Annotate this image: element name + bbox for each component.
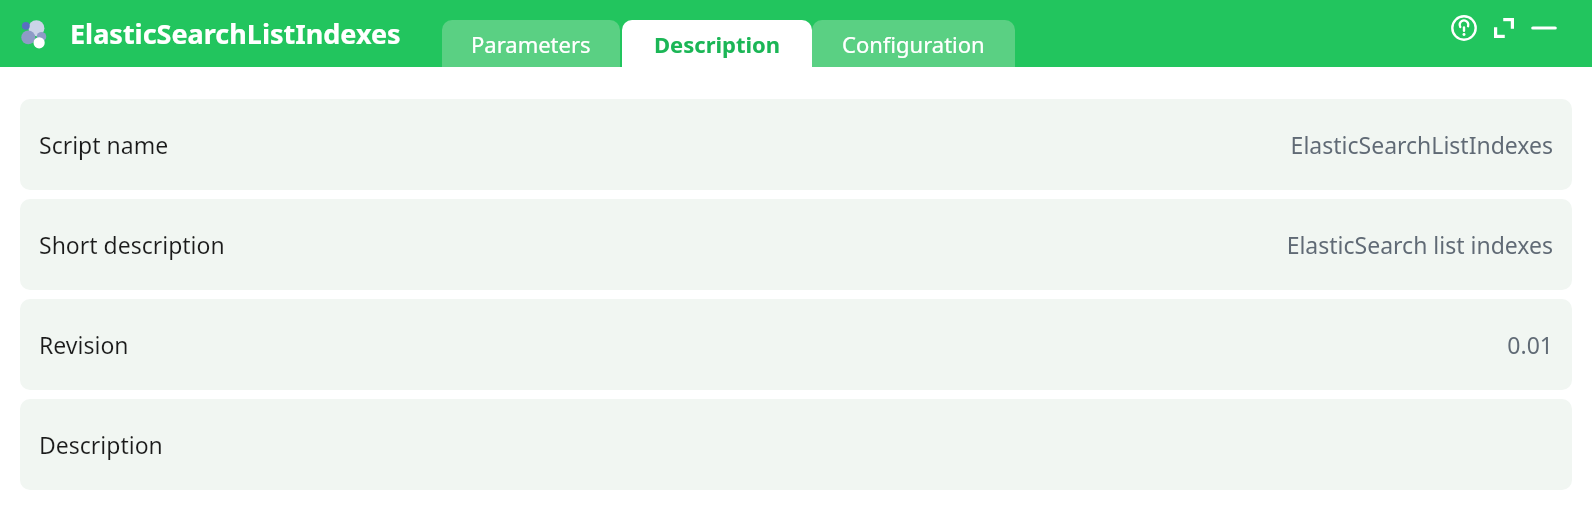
staticText: ElasticSearchListIndexes <box>177 129 1553 160</box>
staticText: Description <box>39 429 163 460</box>
staticText: Script name <box>39 129 169 160</box>
button[interactable]: Description <box>622 20 812 67</box>
button[interactable]: Help <box>1450 14 1478 42</box>
staticText: Parameters <box>471 29 591 59</box>
staticText: Short description <box>39 229 225 260</box>
button[interactable]: Parameters <box>442 20 620 67</box>
staticText: Description <box>654 29 781 59</box>
staticText: Revision <box>39 329 129 360</box>
button[interactable]: Minimize <box>1530 14 1558 42</box>
staticText: Configuration <box>842 29 985 59</box>
button[interactable]: Script name <box>20 99 1572 190</box>
staticText: ElasticSearchListIndexes <box>70 15 401 52</box>
button[interactable]: Configuration <box>812 20 1015 67</box>
button[interactable]: Description <box>20 399 1572 490</box>
staticText: 0.01 <box>137 329 1553 360</box>
staticText: ElasticSearch list indexes <box>233 229 1553 260</box>
button[interactable]: Short description <box>20 199 1572 290</box>
button[interactable]: Maximize <box>1490 14 1518 42</box>
button[interactable]: Revision <box>20 299 1572 390</box>
